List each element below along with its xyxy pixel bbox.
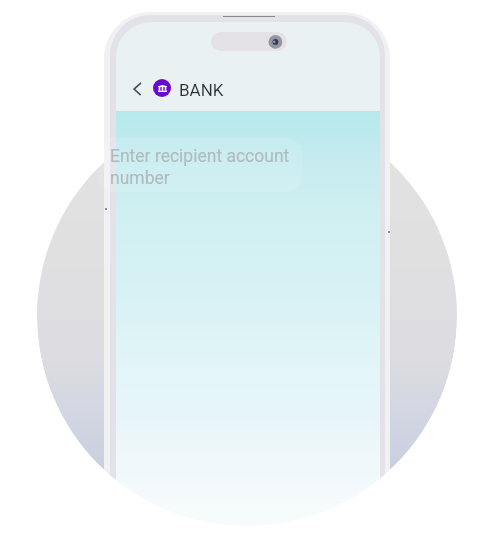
staticText: Enter recipient account number — [110, 146, 292, 188]
staticText: BANK — [179, 80, 224, 100]
button[interactable]: Enter recipient account number — [97, 138, 302, 192]
button[interactable]: Bank — [153, 79, 171, 97]
button[interactable]: Back — [125, 77, 149, 101]
